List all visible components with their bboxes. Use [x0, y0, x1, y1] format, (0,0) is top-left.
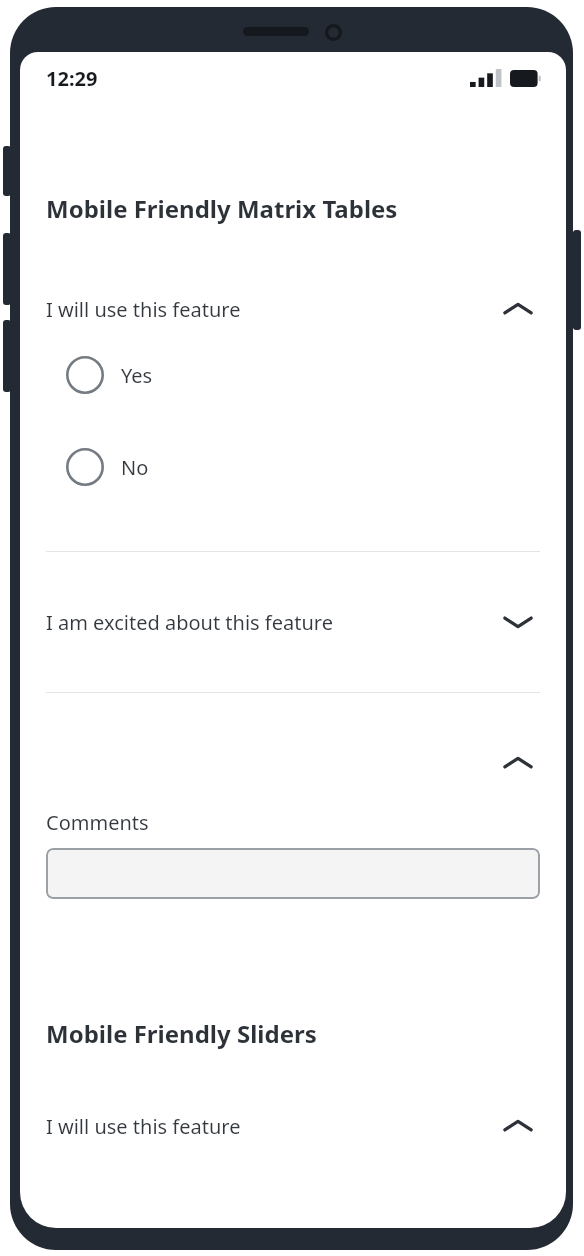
button[interactable]: Collapse I will use this feature [496, 289, 540, 329]
button[interactable]: Expand I am excited about this feature [496, 602, 540, 642]
staticText: 12:29 [46, 65, 98, 92]
button[interactable]: I will use this feature [46, 1098, 540, 1154]
staticText: I will use this feature [46, 296, 496, 323]
button[interactable]: I will use this feature [46, 281, 540, 337]
button[interactable] [46, 848, 540, 899]
button[interactable]: No [46, 437, 540, 497]
button[interactable]: Yes [46, 345, 540, 405]
staticText: Comments [46, 809, 149, 836]
button[interactable]: Collapse I will use this feature [496, 1106, 540, 1146]
button[interactable]: I am excited about this feature [46, 594, 540, 650]
staticText: Mobile Friendly Matrix Tables [46, 192, 398, 225]
staticText: No [121, 454, 149, 481]
button[interactable]: Collapse [46, 735, 540, 791]
staticText: Yes [121, 362, 153, 389]
staticText: I will use this feature [46, 1113, 496, 1140]
button[interactable]: Collapse [496, 743, 540, 783]
staticText: Mobile Friendly Sliders [46, 1017, 317, 1050]
staticText: I am excited about this feature [46, 609, 496, 636]
